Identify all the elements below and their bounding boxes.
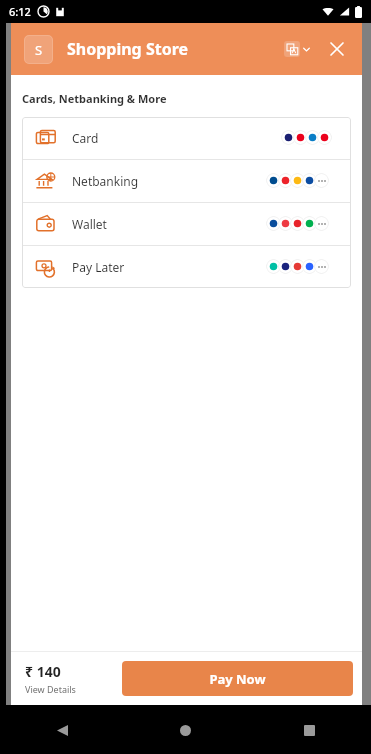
button[interactable]: ₹ 140 (25, 662, 76, 695)
button[interactable]: Card (22, 117, 351, 159)
staticText: Cards, Netbanking & More (22, 91, 167, 106)
button[interactable]: More options (314, 259, 329, 274)
button[interactable]: Change language (282, 38, 312, 60)
staticText: Netbanking (72, 173, 139, 189)
staticText: View Details (25, 683, 76, 695)
button[interactable]: S (24, 35, 53, 64)
button[interactable]: Back (45, 713, 79, 747)
button[interactable]: Wallet (22, 203, 351, 245)
staticText: ₹ 140 (25, 662, 61, 681)
button[interactable]: Pay Now (122, 661, 353, 696)
button[interactable]: Recent apps (292, 713, 326, 747)
staticText: Pay Now (209, 670, 266, 688)
staticText: S (35, 41, 43, 59)
staticText: Card (72, 130, 99, 146)
button[interactable]: More options (314, 173, 329, 188)
button[interactable]: More options (314, 216, 329, 231)
staticText: Shopping Store (67, 38, 189, 60)
button[interactable]: Pay Later (22, 246, 351, 288)
button[interactable]: Netbanking (22, 160, 351, 202)
staticText: Pay Later (72, 259, 125, 275)
staticText: 6:12 (9, 4, 31, 19)
staticText: Wallet (72, 216, 107, 232)
button[interactable]: Close (325, 37, 349, 61)
button[interactable]: Home (168, 713, 202, 747)
